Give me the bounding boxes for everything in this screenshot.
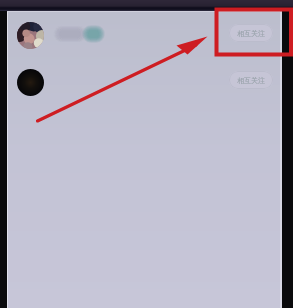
button[interactable]: 相互关注: [7, 56, 282, 103]
staticText: 相互关注: [237, 76, 265, 85]
staticText: 相互关注: [237, 29, 265, 38]
button[interactable]: 相互关注: [229, 24, 273, 42]
button[interactable]: 相互关注: [229, 71, 273, 89]
button[interactable]: 相互关注: [7, 9, 282, 56]
